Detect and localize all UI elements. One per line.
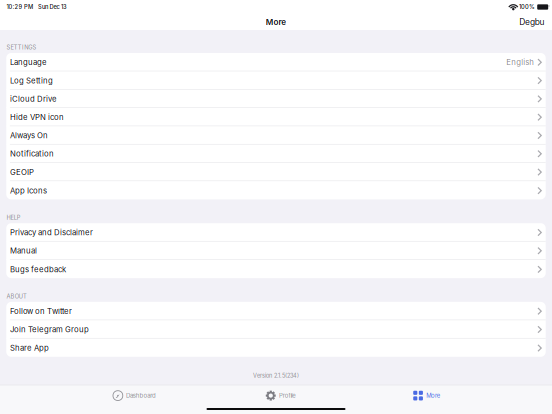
staticText: Bugs feedback <box>10 265 66 274</box>
button[interactable]: GEOIP <box>6 163 546 181</box>
staticText: GEOIP <box>10 167 34 177</box>
staticText: PM <box>24 3 33 10</box>
staticText: Degbu <box>519 17 544 27</box>
button[interactable]: Share App <box>6 338 546 357</box>
button[interactable]: Privacy and Disclaimer <box>6 223 546 241</box>
button[interactable]: iCloud Drive <box>6 90 546 108</box>
staticText: Profile <box>279 392 295 399</box>
button[interactable]: Manual <box>6 241 546 260</box>
staticText: iCloud Drive <box>10 94 57 104</box>
staticText: Dec <box>49 3 59 10</box>
button[interactable]: App Icons <box>6 181 546 199</box>
staticText: SETTINGS <box>6 44 36 51</box>
staticText: HELP <box>6 214 21 221</box>
staticText: Notification <box>10 149 54 158</box>
button[interactable]: Notification <box>6 144 546 163</box>
button[interactable]: Always On <box>6 126 546 144</box>
staticText: English <box>506 58 534 67</box>
staticText: Log Setting <box>10 76 53 85</box>
button[interactable]: Hide VPN icon <box>6 108 546 126</box>
button[interactable]: Join Telegram Group <box>6 320 546 338</box>
button[interactable]: Degbu <box>511 14 552 30</box>
button[interactable]: Dashboard <box>61 389 207 403</box>
button[interactable]: Follow on Twitter <box>6 302 546 320</box>
staticText: Manual <box>10 246 37 255</box>
button[interactable]: More <box>353 389 499 403</box>
staticText: Join Telegram Group <box>10 325 89 334</box>
staticText: Always On <box>10 131 48 140</box>
staticText: App Icons <box>10 186 47 195</box>
staticText: More <box>266 17 286 27</box>
button[interactable]: Bugs feedback <box>6 260 546 278</box>
staticText: Follow on Twitter <box>10 306 72 316</box>
button[interactable]: Log Setting <box>6 71 546 90</box>
button[interactable]: Profile <box>207 389 353 403</box>
staticText: 13 <box>61 3 67 10</box>
staticText: More <box>426 392 440 399</box>
staticText: Share App <box>10 343 49 353</box>
staticText: Privacy and Disclaimer <box>10 228 93 237</box>
staticText: 10:29 <box>6 3 22 10</box>
staticText: Hide VPN icon <box>10 112 64 122</box>
staticText: ABOUT <box>6 293 27 300</box>
staticText: Sun <box>38 3 48 10</box>
staticText: Dashboard <box>126 392 156 399</box>
staticText: Language <box>10 58 47 67</box>
staticText: 100% <box>519 3 535 10</box>
button[interactable]: Language <box>6 53 546 71</box>
staticText: Version 2.1.5(234) <box>253 372 299 379</box>
